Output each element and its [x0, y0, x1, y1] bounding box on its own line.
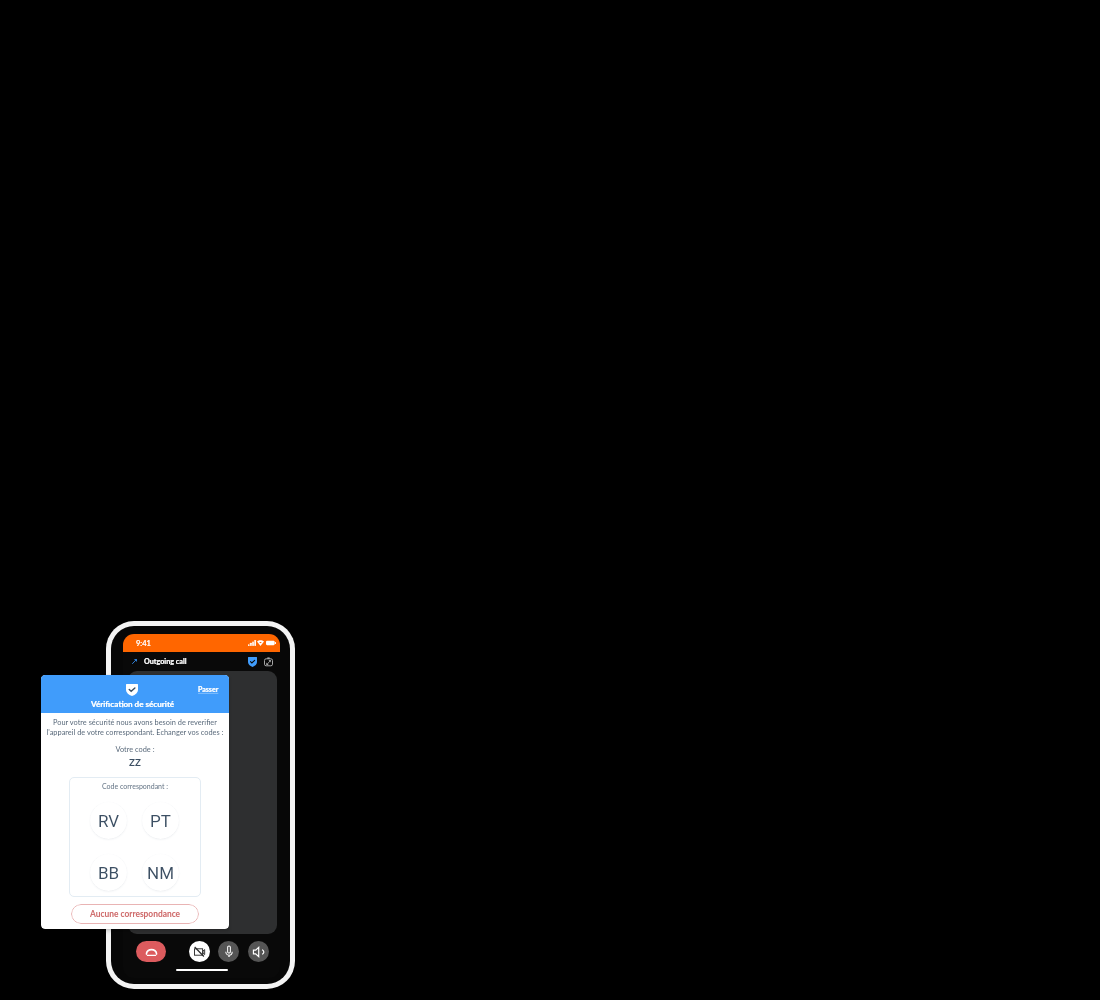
button[interactable]: Speaker [248, 941, 269, 962]
staticText: Vérification de sécurité [91, 699, 175, 709]
staticText: PT [150, 811, 171, 831]
button[interactable]: BB [90, 854, 127, 891]
button[interactable]: NM [142, 854, 179, 891]
button[interactable]: Turn camera off [189, 941, 210, 962]
button[interactable]: Passer [198, 675, 229, 693]
button[interactable]: Encrypted call [248, 657, 257, 667]
button[interactable]: Aucune correspondance [71, 904, 199, 924]
staticText: Pour votre sécurité nous avons besoin de… [41, 718, 229, 737]
button[interactable]: PT [142, 802, 179, 839]
button[interactable]: End call [136, 941, 166, 962]
button[interactable]: Mute microphone [218, 941, 239, 962]
button[interactable]: Outgoing call [132, 659, 137, 664]
staticText: Code correspondant : [102, 782, 169, 790]
staticText: RV [98, 811, 120, 831]
button[interactable]: RV [90, 802, 127, 839]
staticText: Votre code : [41, 745, 229, 754]
button[interactable]: Switch camera [264, 657, 273, 667]
staticText: Outgoing call [144, 657, 187, 666]
staticText: ZZ [41, 756, 229, 768]
staticText: Aucune correspondance [90, 909, 181, 919]
staticText: BB [98, 863, 120, 883]
staticText: 9:41 [136, 639, 151, 648]
staticText: NM [147, 863, 174, 883]
